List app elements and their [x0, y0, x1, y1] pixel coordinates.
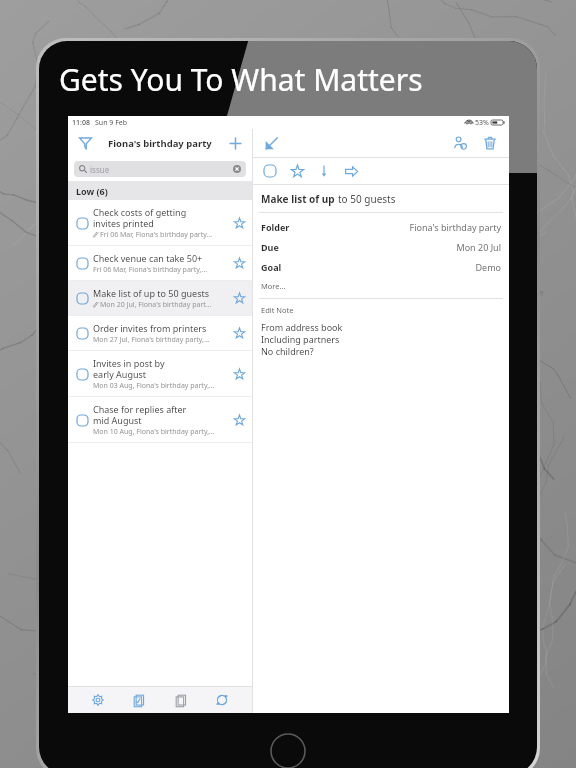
button[interactable]: Complete	[74, 290, 90, 306]
staticText: No children?	[261, 345, 314, 357]
staticText: Edit Note	[261, 305, 294, 315]
button[interactable]: Star	[231, 366, 247, 382]
button[interactable]: From address book	[253, 321, 509, 357]
button[interactable]: Complete	[74, 366, 90, 382]
staticText: Check venue can take 50+	[93, 252, 203, 264]
button[interactable]: issue	[74, 161, 246, 177]
staticText: Order invites from printers	[93, 322, 207, 334]
button[interactable]: Complete	[74, 412, 90, 428]
staticText: Fiona's birthday party	[108, 137, 212, 150]
button[interactable]: Sync	[210, 688, 234, 712]
button[interactable]: Complete	[68, 397, 252, 442]
staticText: Low (6)	[76, 185, 108, 197]
staticText: Folder	[261, 221, 290, 233]
button[interactable]: Star	[231, 255, 247, 271]
button[interactable]: Copy	[169, 688, 193, 712]
button[interactable]: Star	[231, 412, 247, 428]
staticText: 53%	[475, 118, 489, 128]
button[interactable]: Complete	[68, 200, 252, 245]
button[interactable]: Forward	[340, 160, 362, 182]
button[interactable]: Complete	[68, 281, 252, 315]
staticText: More...	[261, 281, 286, 291]
staticText: Due	[261, 241, 279, 253]
button[interactable]: Assign	[449, 132, 471, 154]
staticText: Including partners	[261, 333, 340, 345]
button[interactable]: More...	[253, 277, 509, 295]
button[interactable]: Filter	[75, 133, 95, 153]
staticText: Mon 27 Jul, Fiona's birthday party,…	[93, 335, 210, 345]
button[interactable]: Complete	[68, 246, 252, 280]
button[interactable]: Complete	[74, 325, 90, 341]
button[interactable]: Complete	[68, 351, 252, 396]
staticText: Fiona's birthday party	[409, 221, 501, 233]
button[interactable]: New task	[127, 688, 151, 712]
staticText: Check costs of getting invites printed	[93, 206, 187, 229]
staticText: issue	[90, 164, 110, 175]
button[interactable]: Edit Note	[253, 299, 509, 321]
staticText: Mon 20 Jul, Fiona's birthday part…	[100, 300, 212, 310]
button[interactable]: Goal	[253, 257, 509, 277]
staticText: Demo	[475, 261, 501, 273]
staticText: Gets You To What Matters	[59, 59, 423, 100]
staticText: Fri 06 Mar, Fiona's birthday party…	[100, 230, 213, 240]
staticText: Fri 06 Mar, Fiona's birthday party,…	[93, 265, 207, 275]
button[interactable]: Folder	[253, 217, 509, 237]
staticText: Make list of up to 50 guests	[93, 287, 210, 299]
button[interactable]: Collapse	[261, 133, 281, 153]
staticText: Sun 9 Feb	[95, 118, 128, 128]
button[interactable]: Complete	[74, 255, 90, 271]
button[interactable]: Low (6)	[68, 181, 252, 200]
staticText: Chase for replies after mid August	[93, 403, 187, 426]
staticText: Make list of up	[261, 192, 338, 206]
button[interactable]: Star	[231, 290, 247, 306]
staticText: Mon 10 Aug, Fiona's birthday party,…	[93, 427, 215, 437]
button[interactable]: Mark complete	[259, 160, 281, 182]
button[interactable]: Delete	[479, 132, 501, 154]
button[interactable]: Complete	[74, 215, 90, 231]
button[interactable]: Move down	[313, 160, 335, 182]
button[interactable]: Due	[253, 237, 509, 257]
staticText: Mon 03 Aug, Fiona's birthday party,…	[93, 381, 215, 391]
staticText: Goal	[261, 261, 282, 273]
button[interactable]: Make list of up	[253, 185, 509, 212]
button[interactable]: Star	[231, 325, 247, 341]
staticText: 11:08	[72, 118, 90, 128]
staticText: Mon 20 Jul	[456, 241, 501, 253]
staticText: to 50 guests	[338, 192, 396, 206]
staticText: Invites in post by early August	[93, 357, 165, 380]
staticText: From address book	[261, 321, 343, 333]
button[interactable]: Star	[231, 215, 247, 231]
button[interactable]: Settings	[86, 688, 110, 712]
button[interactable]: Star task	[286, 160, 308, 182]
button[interactable]: Complete	[68, 316, 252, 350]
button[interactable]: Add task	[225, 133, 245, 153]
